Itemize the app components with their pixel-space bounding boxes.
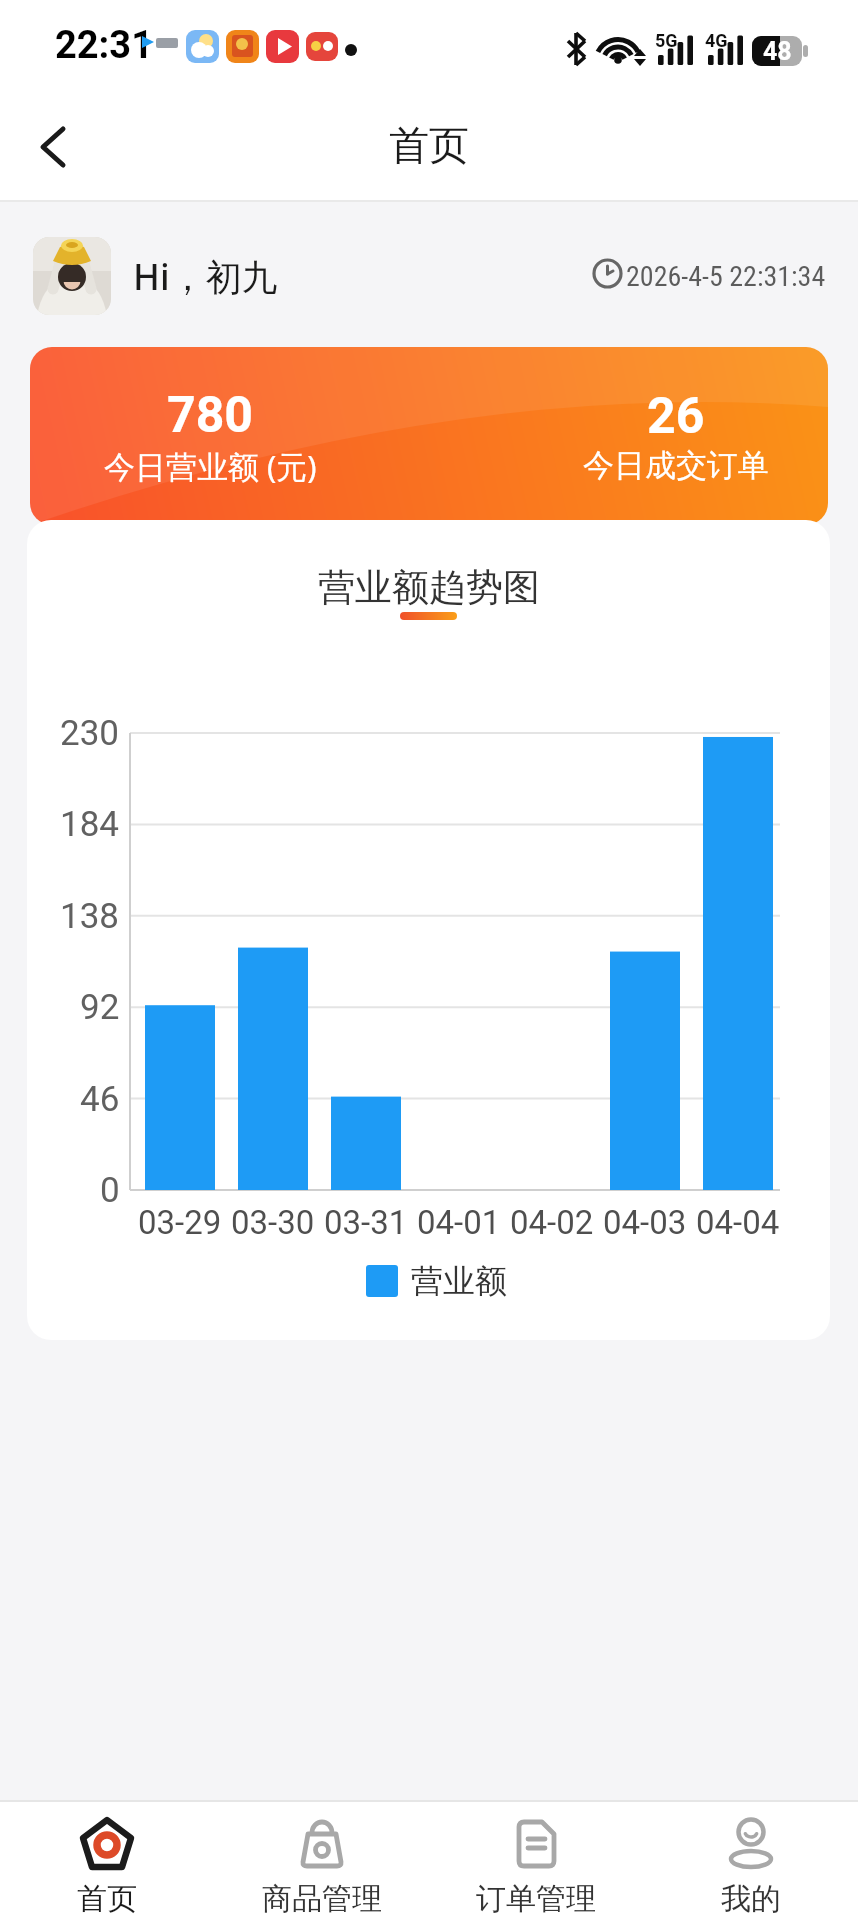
staticText: 04-03 (603, 1203, 687, 1242)
button[interactable]: 首页 (27, 1816, 187, 1918)
button[interactable] (20, 110, 90, 180)
staticText: 4G (705, 30, 728, 50)
staticText: 营业额 (411, 1261, 507, 1301)
staticText: 03-30 (231, 1203, 315, 1242)
staticText: 780 (167, 386, 254, 445)
staticText: 46 (80, 1079, 120, 1120)
staticText: 今日成交订单 (583, 446, 769, 485)
staticText: 0 (100, 1170, 120, 1211)
staticText: 营业额趋势图 (318, 564, 540, 611)
staticText: 48 (763, 37, 792, 66)
button[interactable]: 我的 (671, 1816, 831, 1918)
staticText: 184 (60, 804, 120, 845)
button[interactable]: 商品管理 (242, 1816, 402, 1918)
staticText: 04-01 (417, 1203, 501, 1242)
button[interactable]: 订单管理 (456, 1816, 616, 1918)
button[interactable]: 780 (30, 347, 828, 525)
staticText: 04-04 (696, 1203, 780, 1242)
staticText: 230 (60, 713, 120, 754)
staticText: 04-02 (510, 1203, 594, 1242)
staticText: 首页 (389, 120, 469, 170)
staticText: 92 (80, 987, 120, 1028)
staticText: 138 (60, 896, 120, 937)
staticText: 5G (655, 30, 678, 50)
staticText: 首页 (77, 1880, 137, 1918)
staticText: 22:31 (55, 23, 153, 68)
staticText: 2026-4-5 22:31:34 (626, 260, 826, 293)
staticText: 今日营业额 (元) (104, 445, 317, 487)
staticText: 我的 (721, 1880, 781, 1918)
staticText: 订单管理 (476, 1880, 596, 1918)
staticText: 03-31 (324, 1203, 408, 1242)
staticText: Hi，初九 (133, 252, 278, 301)
staticText: 03-29 (138, 1203, 222, 1242)
staticText: 商品管理 (262, 1880, 382, 1918)
staticText: 26 (647, 387, 705, 446)
